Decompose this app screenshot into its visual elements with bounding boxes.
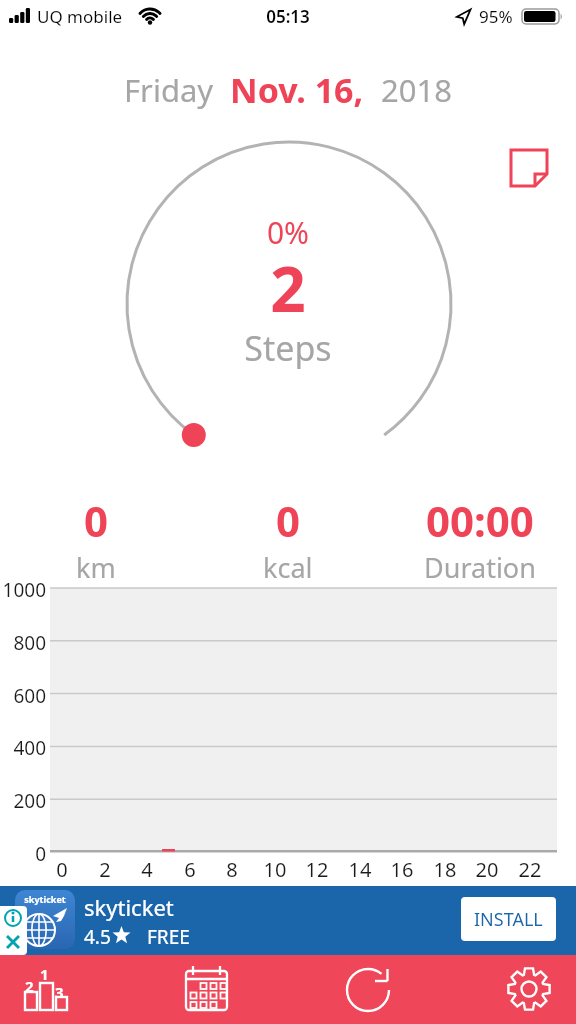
staticText: skyticket bbox=[15, 893, 75, 905]
staticText: 10 bbox=[259, 856, 291, 883]
button[interactable]: INSTALL bbox=[461, 897, 556, 941]
staticText: 16 bbox=[386, 856, 418, 883]
button[interactable] bbox=[484, 955, 576, 1024]
staticText: 00:00 bbox=[426, 492, 534, 549]
staticText: 6 bbox=[174, 856, 206, 883]
staticText: 400 bbox=[0, 735, 46, 761]
staticText: FREE bbox=[147, 924, 190, 950]
staticText: 4 bbox=[131, 856, 163, 883]
staticText: 20 bbox=[471, 856, 503, 883]
staticText: 2 bbox=[0, 246, 576, 330]
button[interactable] bbox=[509, 148, 550, 189]
staticText: 1 bbox=[40, 964, 49, 984]
staticText: Steps bbox=[0, 325, 576, 371]
staticText: 600 bbox=[0, 683, 46, 709]
button[interactable] bbox=[322, 955, 412, 1024]
staticText: 2 bbox=[25, 976, 34, 996]
staticText: 95% bbox=[479, 5, 513, 28]
button[interactable]: skyticket bbox=[0, 886, 576, 955]
staticText: Nov. 16, bbox=[230, 67, 381, 113]
staticText: Friday bbox=[124, 69, 230, 111]
staticText: 14 bbox=[344, 856, 376, 883]
staticText: UQ mobile bbox=[37, 5, 123, 28]
staticText: 800 bbox=[0, 630, 46, 656]
staticText: skyticket bbox=[84, 892, 174, 922]
button[interactable]: 1 bbox=[0, 955, 100, 1024]
staticText: 05:13 bbox=[0, 5, 576, 28]
staticText: INSTALL bbox=[474, 907, 543, 932]
staticText: 0% bbox=[0, 212, 576, 253]
staticText: 4.5 bbox=[84, 924, 111, 950]
staticText: 2018 bbox=[381, 69, 452, 111]
staticText: 200 bbox=[0, 788, 46, 814]
staticText: 0 bbox=[0, 841, 46, 867]
button[interactable] bbox=[157, 955, 247, 1024]
staticText: 0 bbox=[276, 492, 301, 549]
staticText: 3 bbox=[55, 982, 64, 1002]
staticText: 1000 bbox=[0, 577, 46, 603]
staticText: 12 bbox=[301, 856, 333, 883]
staticText: km bbox=[76, 549, 116, 586]
staticText: 22 bbox=[514, 856, 546, 883]
staticText: 0 bbox=[84, 492, 109, 549]
staticText: kcal bbox=[263, 549, 313, 586]
staticText: 8 bbox=[216, 856, 248, 883]
staticText: 18 bbox=[429, 856, 461, 883]
staticText: 2 bbox=[89, 856, 121, 883]
staticText: 0 bbox=[46, 856, 78, 883]
staticText: Duration bbox=[424, 549, 536, 586]
